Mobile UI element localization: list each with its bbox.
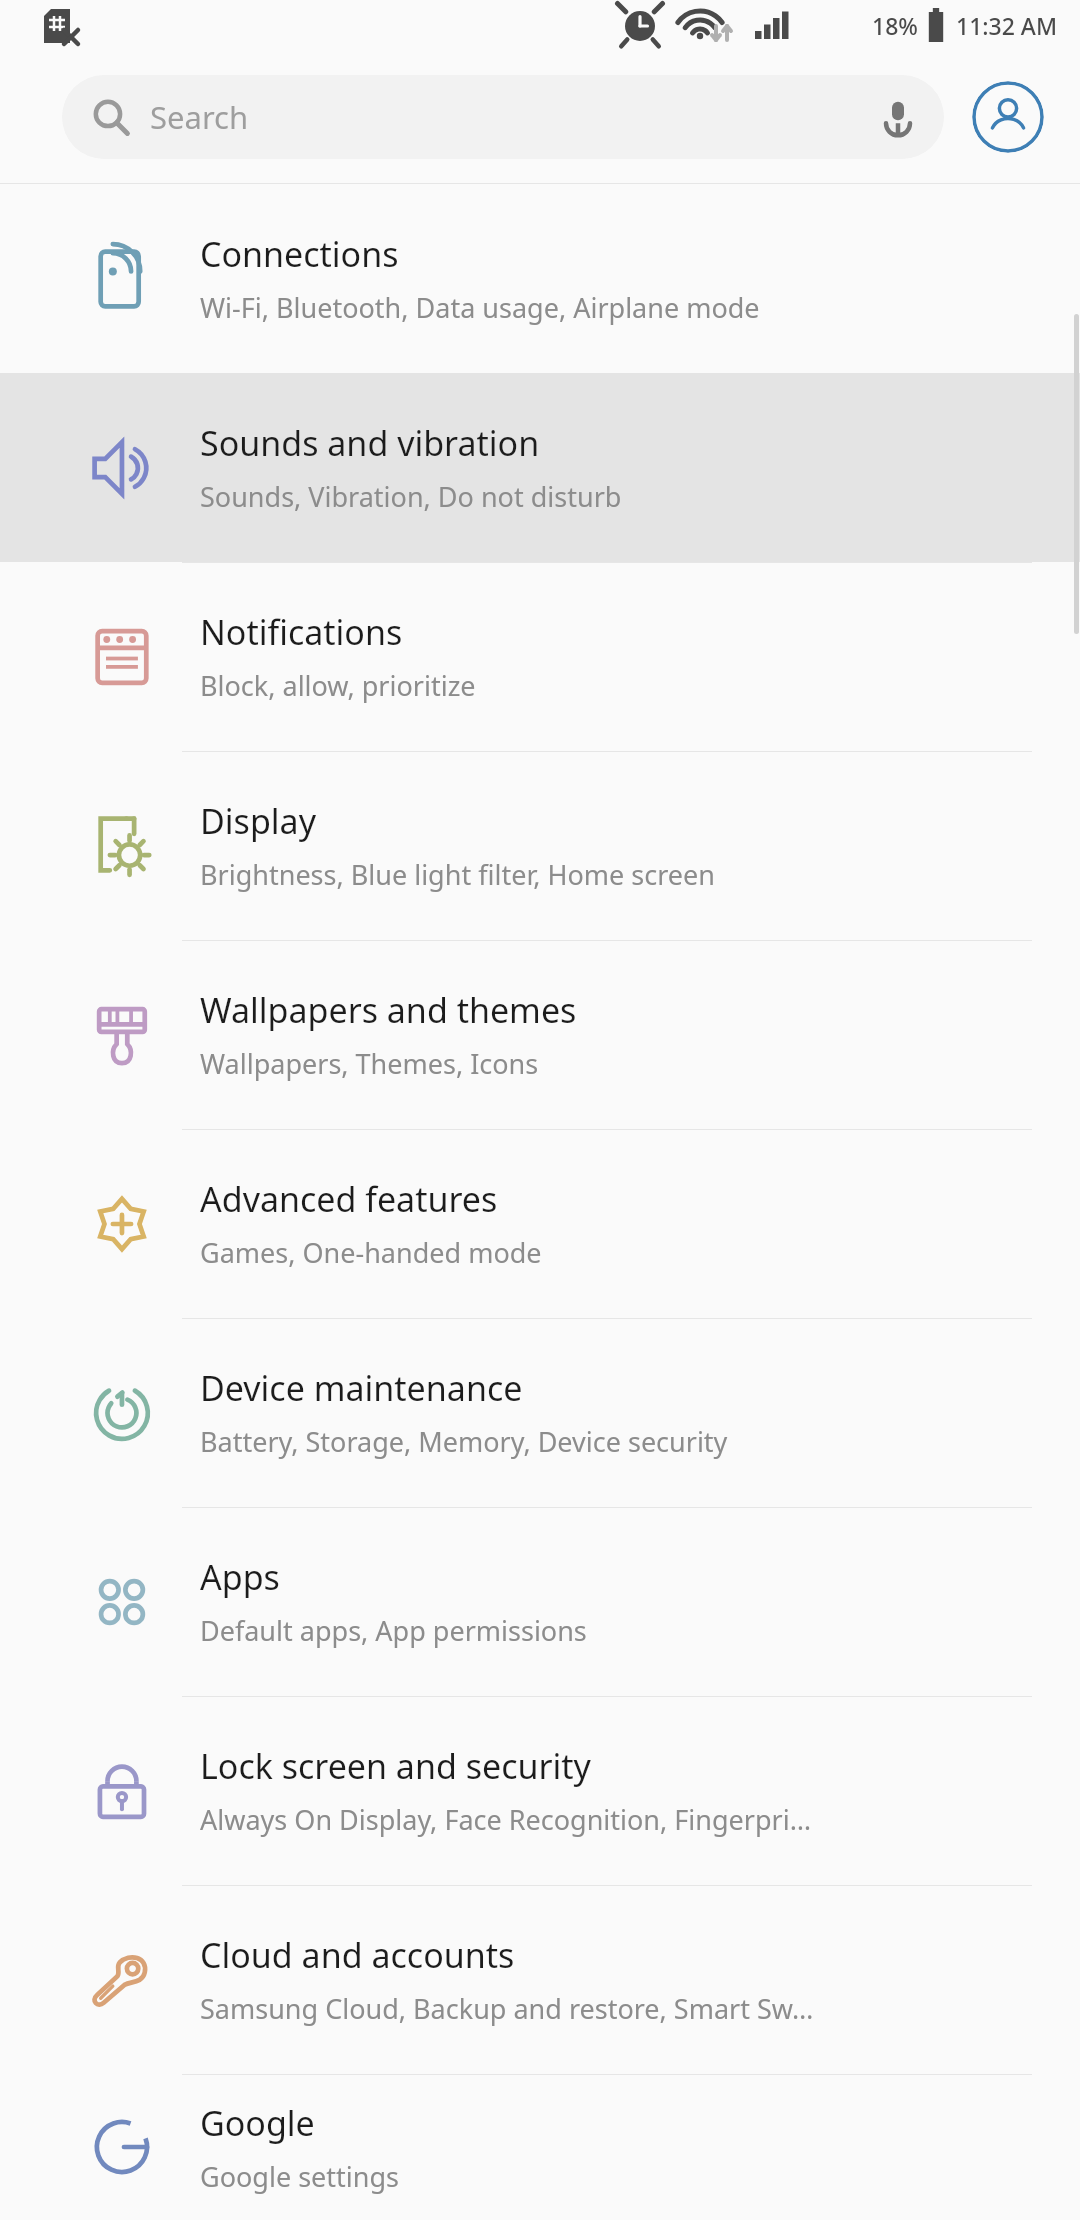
button[interactable]: Lock screen and security: [0, 1696, 1080, 1885]
staticText: Always On Display, Face Recognition, Fin…: [200, 1801, 812, 1838]
button[interactable]: Account: [972, 81, 1044, 153]
staticText: Samsung Cloud, Backup and restore, Smart…: [200, 1990, 814, 2027]
staticText: Cloud and accounts: [200, 1932, 515, 1978]
staticText: Block, allow, prioritize: [200, 667, 476, 704]
button[interactable]: Notifications: [0, 562, 1080, 751]
staticText: Display: [200, 798, 316, 844]
button[interactable]: Device maintenance: [0, 1318, 1080, 1507]
staticText: Battery, Storage, Memory, Device securit…: [200, 1423, 728, 1460]
staticText: Connections: [200, 231, 399, 277]
button[interactable]: Apps: [0, 1507, 1080, 1696]
button[interactable]: Sounds and vibration: [0, 373, 1080, 562]
staticText: Sounds and vibration: [200, 420, 540, 466]
staticText: Search: [150, 96, 878, 138]
button[interactable]: Wallpapers and themes: [0, 940, 1080, 1129]
button[interactable]: Search: [62, 75, 944, 159]
button[interactable]: Google: [0, 2074, 1080, 2220]
staticText: 18%: [872, 10, 918, 41]
staticText: Google settings: [200, 2158, 399, 2195]
staticText: Wallpapers and themes: [200, 987, 577, 1033]
staticText: Default apps, App permissions: [200, 1612, 587, 1649]
staticText: Wallpapers, Themes, Icons: [200, 1045, 539, 1082]
button[interactable]: Cloud and accounts: [0, 1885, 1080, 2074]
staticText: Lock screen and security: [200, 1743, 591, 1789]
staticText: Device maintenance: [200, 1365, 523, 1411]
button[interactable]: Display: [0, 751, 1080, 940]
button[interactable]: Connections: [0, 184, 1080, 373]
staticText: Apps: [200, 1554, 280, 1600]
staticText: Wi-Fi, Bluetooth, Data usage, Airplane m…: [200, 289, 760, 326]
staticText: Advanced features: [200, 1176, 498, 1222]
staticText: Sounds, Vibration, Do not disturb: [200, 478, 622, 515]
staticText: Brightness, Blue light filter, Home scre…: [200, 856, 715, 893]
staticText: 11:32 AM: [956, 10, 1058, 41]
button[interactable]: Advanced features: [0, 1129, 1080, 1318]
staticText: Notifications: [200, 609, 403, 655]
staticText: Games, One-handed mode: [200, 1234, 542, 1271]
staticText: Google: [200, 2100, 315, 2146]
other: Voice search: [878, 97, 918, 137]
